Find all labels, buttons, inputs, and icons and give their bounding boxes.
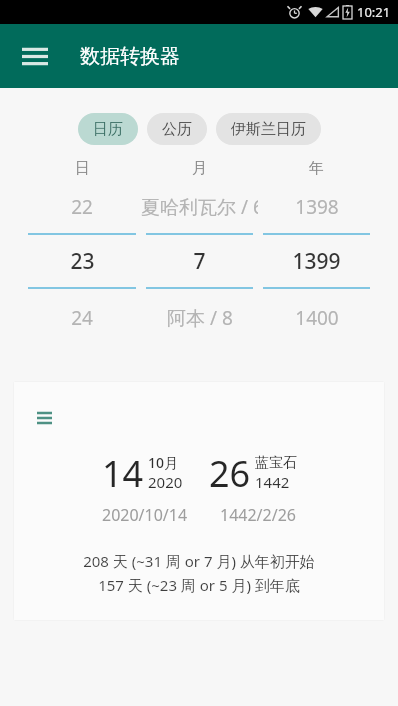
staticText: 蓝宝石: [255, 454, 297, 472]
staticText: 10:21: [357, 3, 391, 21]
staticText: 208 天 (~31 周 or 7 月) 从年初开始: [13, 551, 385, 571]
button[interactable]: 公历: [147, 113, 207, 145]
staticText: 公历: [162, 120, 192, 139]
staticText: 1442: [255, 472, 290, 492]
button[interactable]: 1399: [258, 247, 375, 276]
staticText: 2020: [148, 472, 183, 492]
staticText: 日历: [93, 120, 123, 139]
button[interactable]: Card options menu: [13, 381, 385, 621]
staticText: 1400: [295, 305, 339, 331]
staticText: 2020/10/14: [102, 504, 188, 526]
staticText: 10月: [148, 453, 179, 472]
button[interactable]: 夏哈利瓦尔 / 6: [141, 194, 258, 220]
staticText: 157 天 (~23 周 or 5 月) 到年底: [13, 575, 385, 595]
staticText: 月: [192, 159, 207, 178]
button[interactable]: 22: [23, 194, 141, 220]
button[interactable]: 1398: [258, 194, 375, 220]
button[interactable]: 23: [23, 247, 141, 276]
staticText: 1398: [295, 194, 339, 220]
staticText: 阿本 / 8: [167, 305, 233, 331]
button[interactable]: 日历: [78, 113, 138, 145]
staticText: 22: [71, 194, 93, 220]
button[interactable]: Card options menu: [27, 401, 61, 435]
staticText: 数据转换器: [80, 44, 180, 69]
staticText: 7: [193, 247, 206, 276]
button[interactable]: 阿本 / 8: [141, 305, 258, 331]
staticText: 伊斯兰日历: [231, 120, 306, 139]
staticText: 24: [71, 305, 93, 331]
button[interactable]: 24: [23, 305, 141, 331]
button[interactable]: 7: [141, 247, 258, 276]
button[interactable]: 伊斯兰日历: [216, 113, 321, 145]
button[interactable]: Open navigation menu: [12, 33, 58, 79]
staticText: 1442/2/26: [220, 504, 296, 526]
staticText: 日: [75, 159, 90, 178]
staticText: 1399: [292, 247, 341, 276]
staticText: 23: [70, 247, 95, 276]
button[interactable]: 1400: [258, 305, 375, 331]
staticText: 夏哈利瓦尔 / 6: [141, 194, 258, 220]
staticText: 14: [102, 449, 144, 498]
staticText: 年: [309, 159, 324, 178]
staticText: 26: [209, 449, 251, 498]
